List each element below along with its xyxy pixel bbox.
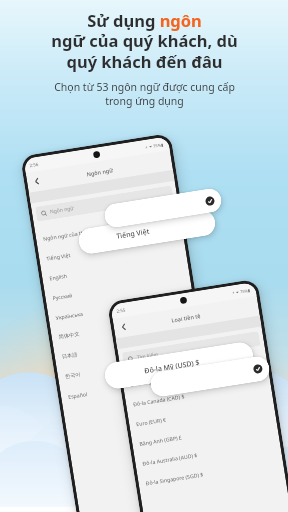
button[interactable]: Bảng Anh (GBP) £: [138, 411, 278, 453]
button[interactable]: 한국어: [63, 345, 204, 386]
staticText: Đô-la Mỹ (USD) $: [129, 374, 171, 388]
staticText: Tiếng Việt: [116, 227, 151, 242]
staticText: Español: [68, 390, 88, 400]
button[interactable]: Selected: [103, 187, 223, 229]
button[interactable]: Tiếng Việt: [45, 226, 185, 268]
button[interactable]: Sử dụng ngôn ngữ của quý khách, dù quý k…: [12, 9, 276, 108]
button[interactable]: English: [48, 246, 188, 287]
staticText: Ngôn ngữ của thiết bị: [43, 227, 97, 242]
button[interactable]: 2:55: [110, 282, 288, 512]
staticText: ⚡ ⏷ 75%▮: [145, 142, 164, 150]
staticText: Українська: [55, 310, 84, 321]
button[interactable]: Русский: [51, 266, 191, 307]
staticText: Chọn từ 53 ngôn ngữ được cung cấp trong …: [54, 80, 235, 108]
staticText: Bảng Anh (GBP) £: [139, 433, 182, 447]
staticText: Đô-la Singapore (SGD) $: [145, 470, 204, 486]
button[interactable]: Đô-la Singapore (SGD) $: [144, 451, 284, 492]
staticText: Sử dụng ngôn ngữ của quý khách, dù quý k…: [51, 9, 238, 73]
staticText: ⚡ ⏷ 75%▮: [232, 288, 251, 296]
button[interactable]: 日本語: [60, 325, 201, 366]
staticText: Đô-la Canada (CAD) $: [132, 392, 185, 407]
staticText: Loại tiền tệ: [171, 312, 202, 323]
button[interactable]: Đô-la Mỹ (USD) $: [128, 352, 269, 394]
staticText: Đô-la Mỹ (USD) $: [144, 358, 201, 376]
button[interactable]: Euro (EUR) €: [135, 392, 275, 433]
button[interactable]: Tìm kiếm: [122, 331, 260, 367]
button[interactable]: Selected: [149, 355, 271, 398]
staticText: Tìm kiếm: [136, 351, 159, 361]
staticText: 2:56: [29, 161, 39, 168]
staticText: Euro (EUR) €: [136, 416, 166, 427]
staticText: Ngôn ngữ: [86, 166, 114, 177]
button[interactable]: Tiếng Việt: [77, 208, 217, 256]
other: Back: [120, 323, 127, 330]
staticText: Tiếng Việt: [46, 251, 71, 262]
staticText: 한국어: [64, 371, 81, 380]
button[interactable]: 2:56: [23, 136, 229, 512]
staticText: English: [49, 272, 68, 281]
staticText: Русский: [52, 291, 73, 301]
button[interactable]: Ngôn ngữ của thiết bị: [41, 206, 182, 248]
staticText: Ngôn ngữ: [49, 205, 74, 216]
staticText: Đô-la Australia (AUD) $: [142, 451, 198, 467]
button[interactable]: Español: [66, 364, 207, 406]
button[interactable]: Українська: [54, 285, 194, 327]
button[interactable]: 简体中文: [57, 305, 197, 347]
button[interactable]: Đô-la Canada (CAD) $: [131, 372, 272, 413]
button[interactable]: Đô-la Australia (AUD) $: [141, 431, 281, 473]
staticText: 简体中文: [58, 330, 80, 341]
staticText: 日本語: [61, 351, 78, 360]
button[interactable]: Ngôn ngữ: [35, 185, 174, 222]
staticText: 2:55: [116, 307, 126, 314]
button[interactable]: Đô-la Mỹ (USD) $: [103, 340, 255, 390]
other: Back: [34, 178, 41, 185]
